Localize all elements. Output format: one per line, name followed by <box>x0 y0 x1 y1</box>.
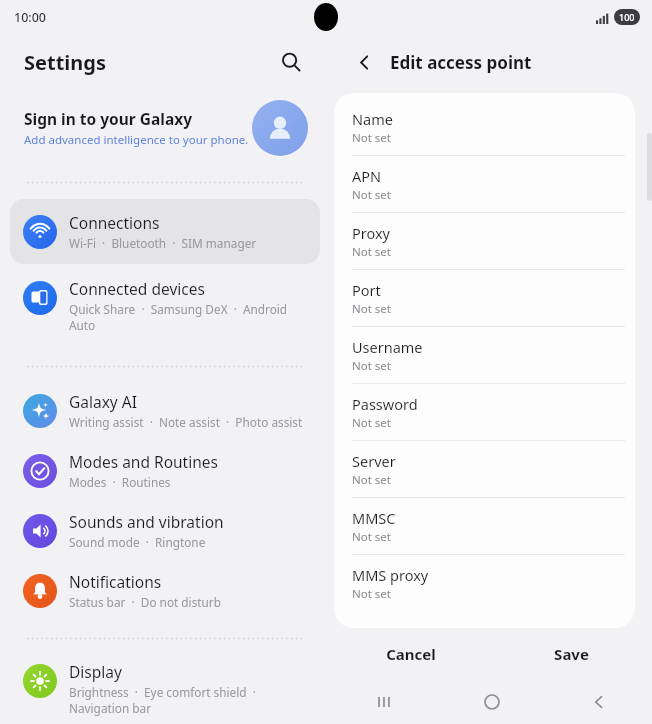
staticText: Not set <box>352 472 391 488</box>
button[interactable]: Galaxy AI <box>10 385 320 436</box>
staticText: Wi-Fi · Bluetooth · SIM manager <box>69 235 257 251</box>
staticText: MMSC <box>352 508 396 528</box>
staticText: Notifications <box>69 571 162 592</box>
staticText: Connections <box>69 212 160 233</box>
staticText: MMS proxy <box>352 565 429 585</box>
staticText: Cancel <box>386 644 436 664</box>
staticText: Writing assist · Note assist · Photo ass… <box>69 414 303 430</box>
staticText: Brightness · Eye comfort shield · Naviga… <box>69 684 310 716</box>
button[interactable]: Back <box>545 680 652 724</box>
button[interactable]: Sign in to your Galaxy <box>0 90 330 166</box>
button[interactable]: Save <box>491 628 652 680</box>
staticText: Not set <box>352 130 391 146</box>
staticText: Save <box>554 644 589 664</box>
staticText: Not set <box>352 358 391 374</box>
staticText: 100 <box>619 11 635 23</box>
button[interactable]: Username <box>334 327 635 384</box>
button[interactable]: Search <box>274 45 308 79</box>
button[interactable]: Connected devices <box>10 270 320 341</box>
staticText: Not set <box>352 415 391 431</box>
button[interactable]: Back <box>348 46 380 78</box>
staticText: APN <box>352 166 382 186</box>
staticText: Connected devices <box>69 278 205 299</box>
button[interactable]: Port <box>334 270 635 327</box>
staticText: Sign in to your Galaxy <box>24 108 193 129</box>
staticText: Server <box>352 451 396 471</box>
button[interactable]: Name <box>334 99 635 156</box>
staticText: Proxy <box>352 223 391 243</box>
staticText: Display <box>69 661 122 682</box>
button[interactable]: Home <box>438 680 545 724</box>
staticText: Name <box>352 109 393 129</box>
staticText: Edit access point <box>390 51 532 74</box>
button[interactable]: Cancel <box>330 628 491 680</box>
button[interactable]: Recents <box>330 680 438 724</box>
button[interactable]: Modes and Routines <box>10 445 320 496</box>
staticText: 10:00 <box>14 9 47 26</box>
button[interactable]: MMS proxy <box>334 555 635 611</box>
button[interactable]: Connections <box>10 199 320 264</box>
staticText: Not set <box>352 529 391 545</box>
staticText: Sound mode · Ringtone <box>69 534 206 550</box>
staticText: Settings <box>24 49 106 76</box>
staticText: Not set <box>352 187 391 203</box>
button[interactable]: Notifications <box>10 565 320 616</box>
staticText: Modes · Routines <box>69 474 171 490</box>
staticText: Modes and Routines <box>69 451 218 472</box>
button[interactable]: APN <box>334 156 635 213</box>
button[interactable]: Sounds and vibration <box>10 505 320 556</box>
staticText: Username <box>352 337 423 357</box>
button[interactable]: Proxy <box>334 213 635 270</box>
staticText: Galaxy AI <box>69 391 137 412</box>
button[interactable]: Server <box>334 441 635 498</box>
button[interactable]: Password <box>334 384 635 441</box>
button[interactable]: MMSC <box>334 498 635 555</box>
staticText: Password <box>352 394 418 414</box>
staticText: Not set <box>352 586 391 602</box>
staticText: Quick Share · Samsung DeX · Android Auto <box>69 301 310 333</box>
staticText: Add advanced intelligence to your phone. <box>24 132 249 148</box>
staticText: Not set <box>352 244 391 260</box>
button[interactable]: Display <box>10 655 320 722</box>
staticText: Status bar · Do not disturb <box>69 594 221 610</box>
staticText: Not set <box>352 301 391 317</box>
staticText: Sounds and vibration <box>69 511 224 532</box>
staticText: Port <box>352 280 381 300</box>
